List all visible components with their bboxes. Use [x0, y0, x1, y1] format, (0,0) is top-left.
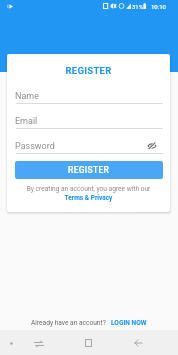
button[interactable]: Show password: [145, 139, 159, 152]
staticText: 31%: [132, 3, 144, 10]
staticText: By creating an account, you agree with o…: [7, 185, 170, 193]
staticText: Password: [15, 141, 55, 152]
button[interactable]: Assistant: [3, 335, 20, 352]
button[interactable]: LOGIN NOW: [111, 319, 147, 327]
button[interactable]: Back: [129, 334, 146, 351]
staticText: Already have an account?: [31, 319, 111, 327]
staticText: 10:10: [151, 3, 166, 10]
button[interactable]: Recent apps: [80, 334, 97, 351]
staticText: REGISTER: [7, 65, 170, 76]
button[interactable]: Split screen: [30, 335, 47, 352]
button[interactable]: Terms & Privacy: [7, 194, 170, 202]
staticText: Email: [15, 116, 38, 127]
staticText: REGISTER: [68, 165, 110, 175]
staticText: Name: [15, 91, 39, 102]
button[interactable]: REGISTER: [15, 161, 163, 179]
